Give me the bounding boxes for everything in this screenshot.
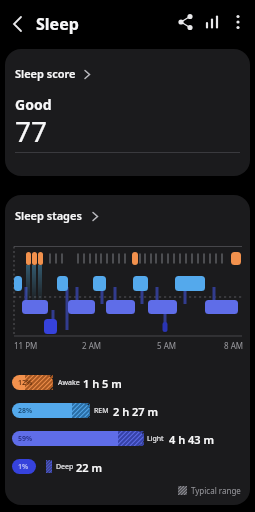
staticText: 28% xyxy=(18,406,33,416)
staticText: Awake xyxy=(58,378,80,388)
staticText: 2 h 27 m xyxy=(113,404,159,419)
staticText: REM xyxy=(94,406,109,416)
staticText: 4 h 43 m xyxy=(169,432,215,447)
staticText: Sleep score xyxy=(15,66,76,81)
staticText: 11 PM xyxy=(14,340,38,351)
staticText: Light xyxy=(147,434,164,444)
button[interactable]: 12% xyxy=(12,375,250,390)
button[interactable]: 59% xyxy=(12,431,250,446)
staticText: Deep xyxy=(56,462,74,472)
staticText: 22 m xyxy=(76,460,103,475)
staticText: 5 AM xyxy=(157,340,177,351)
button[interactable]: Sleep stages xyxy=(15,208,100,223)
staticText: 1% xyxy=(18,462,29,472)
staticText: Typical range xyxy=(191,485,241,496)
button[interactable] xyxy=(176,12,196,32)
staticText: Good xyxy=(15,95,52,114)
staticText: 8 AM xyxy=(224,340,244,351)
button[interactable] xyxy=(202,12,222,32)
staticText: 12% xyxy=(18,378,33,388)
button[interactable]: 1% xyxy=(12,459,250,474)
staticText: 77 xyxy=(15,112,48,150)
button[interactable]: Sleep score xyxy=(5,49,250,176)
staticText: 59% xyxy=(18,434,33,444)
button[interactable]: 28% xyxy=(12,403,250,418)
staticText: 2 AM xyxy=(82,340,102,351)
staticText: Sleep stages xyxy=(15,208,82,223)
button[interactable] xyxy=(6,12,30,36)
staticText: 1 h 5 m xyxy=(83,376,122,391)
staticText: Sleep xyxy=(36,13,79,35)
button[interactable] xyxy=(228,12,248,32)
